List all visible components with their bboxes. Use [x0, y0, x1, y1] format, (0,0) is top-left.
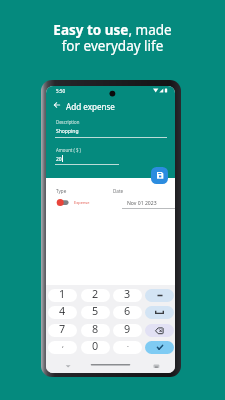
- button[interactable]: 8: [81, 324, 110, 337]
- staticText: 4: [59, 306, 66, 316]
- staticText: Description: [56, 119, 80, 125]
- button[interactable]: Expense: [56, 198, 90, 207]
- staticText: 5:50: [56, 88, 66, 94]
- button[interactable]: ,: [48, 341, 77, 354]
- staticText: 20: [56, 156, 62, 163]
- staticText: 2: [92, 289, 99, 299]
- staticText: ,: [62, 341, 64, 350]
- staticText: 9: [124, 324, 131, 334]
- button[interactable]: 5: [81, 306, 110, 319]
- staticText: 5: [92, 306, 99, 316]
- staticText: Add expense: [66, 101, 115, 112]
- staticText: 7: [59, 324, 66, 334]
- button[interactable]: back: [145, 324, 174, 337]
- staticText: Date: [113, 188, 124, 194]
- button[interactable]: space: [145, 306, 174, 319]
- staticText: Type: [56, 188, 67, 194]
- staticText: Nov 01 2023: [127, 200, 157, 207]
- staticText: 1: [59, 289, 66, 299]
- staticText: 6: [124, 306, 131, 316]
- button[interactable]: 4: [48, 306, 77, 319]
- staticText: Easy to use, made for everyday life: [53, 21, 172, 55]
- button[interactable]: 3: [113, 289, 142, 302]
- button[interactable]: .: [113, 341, 142, 354]
- button[interactable]: minus: [145, 289, 174, 302]
- button[interactable]: 6: [113, 306, 142, 319]
- staticText: 8: [92, 324, 99, 334]
- button[interactable]: Back: [51, 99, 63, 111]
- staticText: 3: [124, 289, 131, 299]
- button[interactable]: enter: [145, 341, 174, 354]
- button[interactable]: 1: [48, 289, 77, 302]
- button[interactable]: 9: [113, 324, 142, 337]
- button[interactable]: 7: [48, 324, 77, 337]
- button[interactable]: 20: [55, 155, 119, 165]
- button[interactable]: Save: [151, 167, 168, 184]
- staticText: 0: [92, 341, 99, 351]
- staticText: .: [127, 341, 129, 350]
- button[interactable]: Shopping: [55, 127, 167, 137]
- button[interactable]: Nov 01 2023: [122, 199, 175, 210]
- staticText: Shopping: [56, 128, 79, 135]
- staticText: Amount ( $ ): [56, 147, 81, 153]
- button[interactable]: 0: [81, 341, 110, 354]
- staticText: Expense: [74, 200, 90, 205]
- button[interactable]: 2: [81, 289, 110, 302]
